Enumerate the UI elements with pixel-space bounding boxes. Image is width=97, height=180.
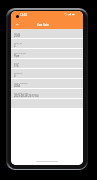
staticText: quantity — [14, 72, 23, 75]
button[interactable]: item_name — [11, 49, 83, 58]
button[interactable]: bill_date_time — [11, 89, 83, 98]
button[interactable]: price — [11, 59, 83, 68]
staticText: Raw Data — [37, 23, 49, 27]
staticText: from_id — [14, 42, 22, 45]
button[interactable]: quantity — [11, 69, 83, 78]
staticText: item_name — [14, 52, 26, 55]
staticText: 2568 — [14, 34, 20, 38]
staticText: 2064 — [14, 84, 20, 88]
staticText: 2023-08-28 20:57:04 — [14, 94, 39, 98]
staticText: bill_id — [14, 32, 20, 35]
staticText: 12:34 — [20, 13, 27, 17]
staticText: 516 — [14, 64, 19, 68]
staticText: 2 — [14, 44, 16, 48]
staticText: total_amount — [14, 82, 28, 85]
button[interactable]: total_amount — [11, 79, 83, 88]
staticText: Pipe — [14, 54, 20, 58]
staticText: bill_date_time — [14, 92, 29, 95]
button[interactable]: Back — [13, 20, 21, 28]
button[interactable]: from_id — [11, 39, 83, 48]
button[interactable]: bill_id — [11, 29, 83, 38]
staticText: price — [14, 62, 20, 65]
staticText: 4 — [14, 74, 16, 78]
